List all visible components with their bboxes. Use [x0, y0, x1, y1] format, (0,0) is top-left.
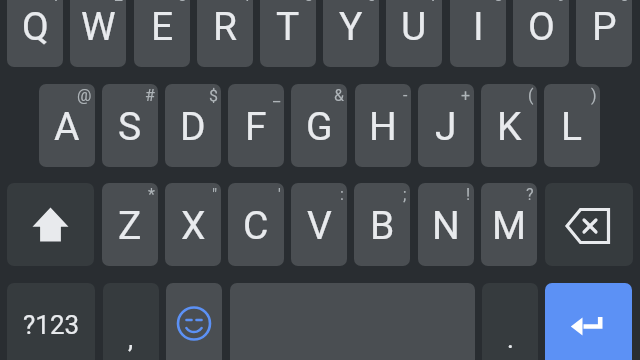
button[interactable]: Y	[323, 0, 379, 67]
staticText: U	[401, 4, 427, 50]
staticText: 4	[241, 0, 250, 5]
staticText: H	[369, 104, 397, 150]
staticText: 6	[367, 0, 376, 5]
staticText: :	[340, 185, 344, 204]
staticText: S	[118, 104, 142, 150]
button[interactable]: X	[165, 183, 221, 266]
staticText: ?123	[23, 310, 80, 340]
button[interactable]: A	[39, 84, 95, 167]
staticText: A	[54, 104, 80, 150]
staticText: "	[212, 185, 218, 204]
button[interactable]: K	[481, 84, 537, 167]
button[interactable]: L	[544, 84, 600, 167]
button[interactable]: W	[70, 0, 126, 67]
button[interactable]: P	[576, 0, 632, 67]
staticText: '	[278, 185, 281, 204]
button[interactable]: G	[291, 84, 347, 167]
staticText: B	[370, 203, 395, 249]
staticText: 0	[620, 0, 629, 5]
staticText: Q	[22, 4, 49, 50]
staticText: -	[403, 86, 408, 105]
button[interactable]: U	[386, 0, 442, 67]
staticText: 7	[430, 0, 439, 5]
staticText: *	[148, 185, 155, 204]
button[interactable]: Shift	[7, 183, 94, 266]
button[interactable]: M	[481, 183, 537, 266]
staticText: Y	[339, 4, 363, 50]
staticText: C	[243, 203, 269, 249]
staticText: J	[435, 104, 457, 150]
staticText: @	[77, 86, 92, 105]
button[interactable]: D	[165, 84, 221, 167]
staticText: 3	[178, 0, 187, 5]
staticText: 8	[494, 0, 503, 5]
button[interactable]: Backspace	[545, 183, 633, 266]
staticText: T	[276, 4, 300, 50]
button[interactable]: J	[418, 84, 474, 167]
button[interactable]: ?123	[7, 283, 95, 360]
staticText: .	[507, 324, 514, 354]
button[interactable]: T	[260, 0, 316, 67]
button[interactable]: Enter	[545, 283, 632, 360]
button[interactable]: V	[291, 183, 347, 266]
staticText: R	[213, 4, 238, 50]
button[interactable]: ,	[103, 283, 159, 360]
button[interactable]: I	[450, 0, 506, 67]
staticText: +	[461, 86, 471, 105]
staticText: G	[306, 104, 333, 150]
staticText: E	[151, 4, 174, 50]
staticText: 2	[114, 0, 123, 5]
button[interactable]: Z	[102, 183, 158, 266]
staticText: 5	[304, 0, 313, 5]
staticText: X	[181, 203, 206, 249]
staticText: 9	[557, 0, 566, 5]
staticText: !	[466, 185, 471, 204]
staticText: P	[592, 4, 617, 50]
button[interactable]: E	[134, 0, 190, 67]
button[interactable]: B	[354, 183, 410, 266]
button[interactable]: Emoji	[166, 283, 222, 360]
staticText: I	[473, 4, 484, 50]
button[interactable]: S	[102, 84, 158, 167]
button[interactable]: F	[228, 84, 284, 167]
staticText: )	[591, 86, 597, 105]
staticText: D	[180, 104, 206, 150]
staticText: W	[81, 4, 116, 50]
staticText: M	[492, 203, 527, 249]
button[interactable]: O	[513, 0, 569, 67]
staticText: F	[245, 104, 267, 150]
button[interactable]: C	[228, 183, 284, 266]
staticText: V	[307, 203, 332, 249]
staticText: (	[528, 86, 534, 105]
staticText: N	[432, 203, 460, 249]
button[interactable]: .	[482, 283, 538, 360]
button[interactable]: Q	[7, 0, 63, 67]
staticText: ?	[526, 185, 534, 204]
staticText: 1	[51, 0, 60, 5]
staticText: #	[145, 86, 155, 105]
staticText: K	[497, 104, 522, 150]
button[interactable]: N	[418, 183, 474, 266]
staticText: O	[528, 4, 555, 50]
staticText: $	[209, 86, 218, 105]
staticText: ,	[128, 324, 134, 354]
staticText: ;	[403, 185, 407, 204]
staticText: L	[561, 104, 583, 150]
button[interactable]: H	[355, 84, 411, 167]
button[interactable]: R	[197, 0, 253, 67]
staticText: _	[273, 86, 281, 105]
staticText: &	[334, 86, 344, 105]
staticText: Z	[118, 203, 142, 249]
